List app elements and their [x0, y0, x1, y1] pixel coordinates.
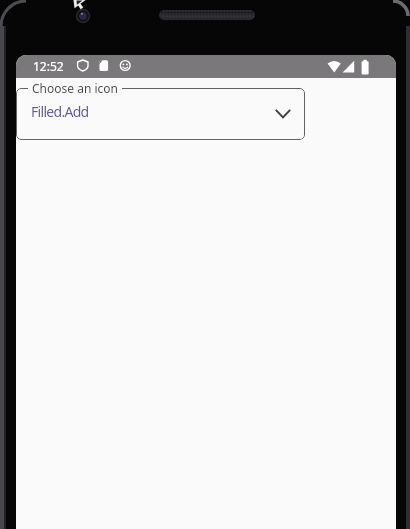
button[interactable]: Filled.Add: [16, 88, 305, 140]
staticText: 12:52: [33, 58, 64, 74]
staticText: Choose an icon: [32, 80, 118, 96]
staticText: Filled.Add: [31, 102, 89, 121]
